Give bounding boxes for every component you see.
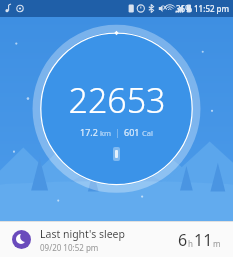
other: Device battery	[113, 147, 120, 161]
staticText: m	[213, 238, 221, 249]
staticText: h	[188, 238, 193, 249]
staticText: |	[111, 127, 124, 138]
staticText: 11	[194, 229, 213, 251]
staticText: km	[98, 128, 111, 138]
staticText: 22653	[68, 77, 166, 123]
button[interactable]: Last night's sleep	[0, 222, 233, 257]
staticText: 36% 11:52 pm	[176, 3, 230, 14]
staticText: 601	[124, 126, 140, 138]
staticText: Last night's sleep	[40, 227, 125, 241]
staticText: 6	[178, 229, 188, 251]
staticText: Cal	[140, 128, 153, 138]
staticText: 17.2	[80, 126, 98, 138]
staticText: 09/20 10:52 pm	[40, 242, 99, 253]
